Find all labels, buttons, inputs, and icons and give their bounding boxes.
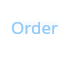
staticText: Order — [11, 16, 59, 39]
